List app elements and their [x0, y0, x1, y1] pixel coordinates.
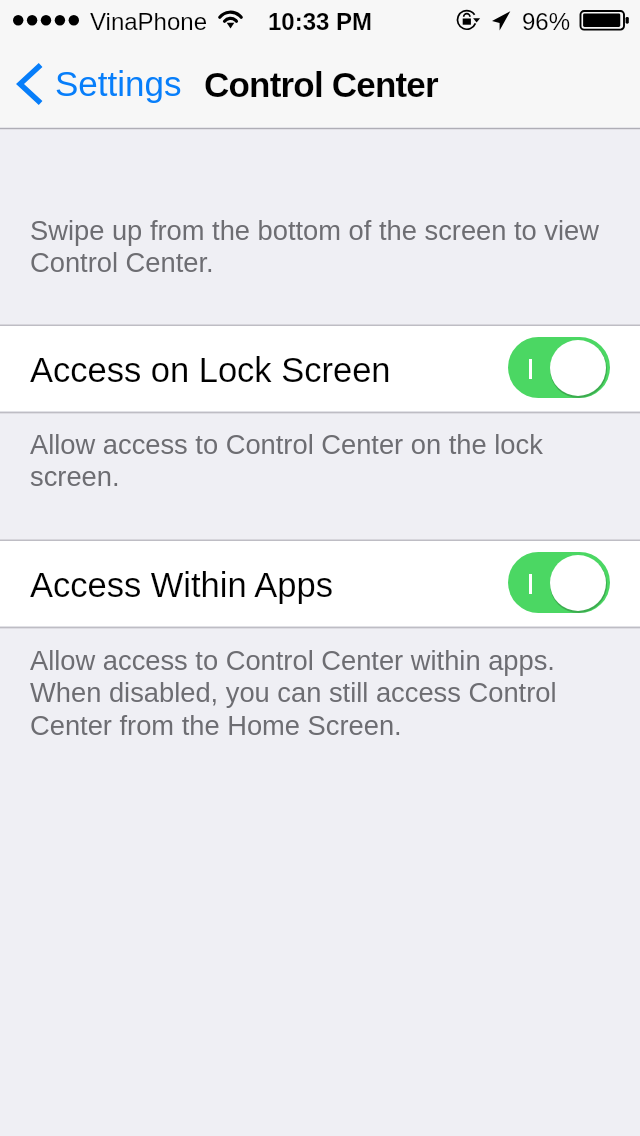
staticText: Settings: [55, 64, 182, 103]
button[interactable]: Access on Lock Screen: [0, 326, 640, 411]
button[interactable]: Toggle on: [508, 337, 610, 398]
button[interactable]: Back: [12, 40, 169, 128]
button[interactable]: Access Within Apps: [0, 541, 640, 626]
staticText: Access Within Apps: [30, 566, 333, 605]
staticText: Access on Lock Screen: [30, 351, 391, 390]
button[interactable]: Toggle on: [508, 552, 610, 613]
staticText: Control Center: [204, 65, 438, 104]
staticText: 10:33 PM: [268, 8, 373, 35]
staticText: 96%: [522, 8, 571, 35]
other: Back: [12, 60, 42, 108]
staticText: Swipe up from the bottom of the screen t…: [30, 215, 614, 278]
staticText: VinaPhone: [90, 8, 207, 35]
staticText: Allow access to Control Center on the lo…: [30, 429, 614, 492]
staticText: Allow access to Control Center within ap…: [30, 645, 614, 741]
